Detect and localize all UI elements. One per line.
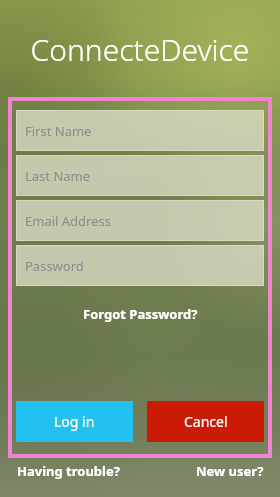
staticText: New user? bbox=[196, 462, 264, 480]
staticText: ConnecteDevice bbox=[0, 29, 280, 70]
button[interactable]: Last Name bbox=[16, 155, 264, 196]
button[interactable]: Log in bbox=[16, 401, 133, 442]
staticText: Email Address bbox=[25, 212, 111, 230]
staticText: Log in bbox=[54, 412, 95, 431]
button[interactable]: First Name bbox=[16, 110, 264, 151]
button[interactable]: Email Address bbox=[16, 200, 264, 241]
staticText: Password bbox=[25, 257, 84, 275]
staticText: Having trouble? bbox=[17, 462, 120, 480]
button[interactable]: Cancel bbox=[147, 401, 264, 442]
staticText: Forgot Password? bbox=[83, 305, 198, 323]
staticText: First Name bbox=[25, 122, 92, 140]
button[interactable]: Password bbox=[16, 245, 264, 286]
button[interactable]: New user? bbox=[196, 462, 264, 480]
button[interactable]: Having trouble? bbox=[17, 462, 120, 480]
button[interactable]: Forgot Password? bbox=[16, 300, 264, 328]
staticText: Cancel bbox=[184, 412, 228, 431]
staticText: Last Name bbox=[25, 167, 91, 185]
